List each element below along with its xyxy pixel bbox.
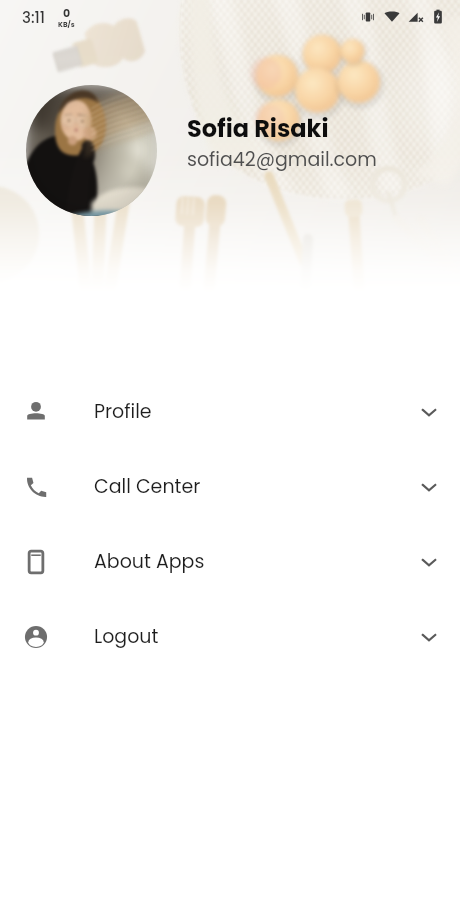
button[interactable]: Profile (0, 389, 460, 434)
button[interactable]: Logout (0, 614, 460, 659)
staticText: Call Center (94, 473, 201, 500)
other: Expand Call Center (416, 474, 442, 500)
other: Expand Logout (416, 624, 442, 650)
staticText: Logout (94, 623, 159, 650)
staticText: KB/s (58, 20, 75, 30)
staticText: 3:11 (22, 7, 46, 28)
button[interactable]: About Apps (0, 539, 460, 584)
staticText: About Apps (94, 548, 205, 575)
staticText: 0 (63, 5, 71, 20)
staticText: sofia42@gmail.com (187, 146, 377, 173)
other: Expand Profile (416, 399, 442, 425)
staticText: Sofia Risaki (187, 112, 329, 146)
button[interactable]: Call Center (0, 464, 460, 509)
other: Expand About Apps (416, 549, 442, 575)
staticText: Profile (94, 398, 152, 425)
